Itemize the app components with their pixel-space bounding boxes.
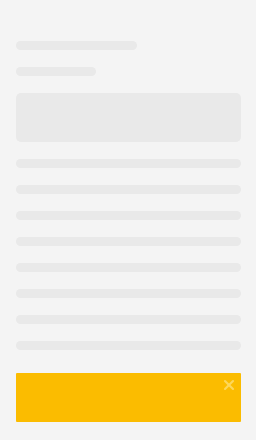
button[interactable]: Dismiss [217,373,241,397]
button[interactable]: Dismiss [16,373,241,422]
